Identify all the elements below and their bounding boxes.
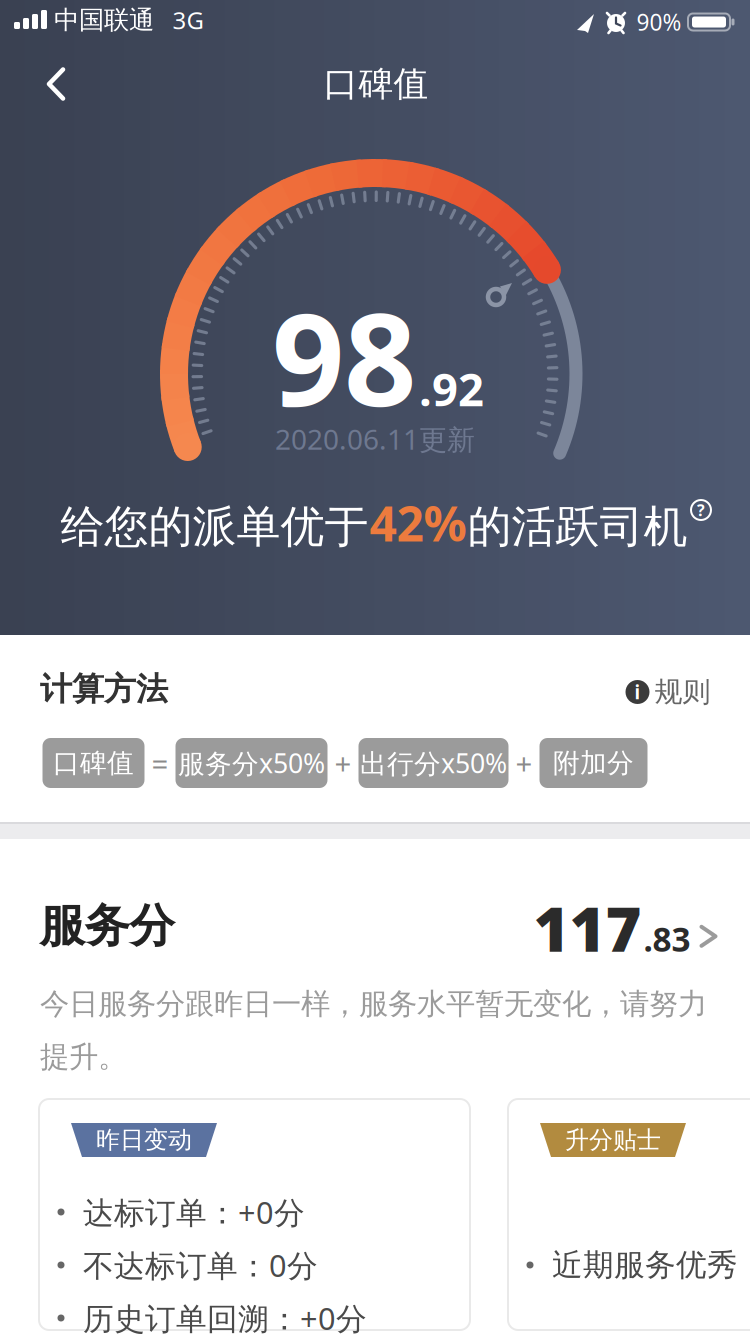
staticText: 98 bbox=[272, 273, 416, 441]
staticText: 42% bbox=[369, 491, 466, 555]
staticText: 给您的派单优于 bbox=[60, 500, 368, 554]
staticText: 出行分x50% bbox=[360, 745, 507, 781]
button[interactable]: i bbox=[625, 675, 710, 709]
staticText: 升分贴士 bbox=[565, 1125, 661, 1155]
staticText: 的活跃司机 bbox=[467, 500, 687, 554]
staticText: 2020.06.11更新 bbox=[275, 420, 475, 458]
staticText: 中国联通 bbox=[54, 4, 154, 35]
staticText: 不达标订单：0分 bbox=[83, 1245, 318, 1285]
staticText: 117 bbox=[533, 887, 641, 969]
staticText: = bbox=[151, 743, 168, 782]
staticText: + bbox=[515, 743, 532, 782]
staticText: i bbox=[634, 680, 640, 704]
staticText: .83 bbox=[643, 917, 690, 961]
staticText: 3G bbox=[172, 4, 203, 36]
staticText: 规则 bbox=[654, 675, 710, 709]
staticText: 近期服务优秀，请继续保持 bbox=[552, 1246, 750, 1284]
staticText: 提升。 bbox=[40, 1039, 127, 1075]
staticText: 今日服务分跟昨日一样，服务水平暂无变化，请努力 bbox=[40, 986, 707, 1022]
staticText: 口碑值 bbox=[53, 747, 134, 779]
staticText: 服务分 bbox=[39, 898, 174, 954]
staticText: .92 bbox=[419, 358, 484, 419]
staticText: 计算方法 bbox=[40, 669, 168, 709]
staticText: 服务分x50% bbox=[178, 745, 325, 781]
staticText: 附加分 bbox=[553, 747, 634, 779]
button[interactable]: 服务分 117.83 bbox=[533, 887, 722, 969]
staticText: + bbox=[334, 743, 351, 782]
staticText: 90% bbox=[636, 7, 681, 37]
button[interactable]: 返回 bbox=[22, 40, 110, 130]
staticText: ? bbox=[697, 499, 705, 521]
staticText: 达标订单：+0分 bbox=[83, 1192, 305, 1232]
staticText: 昨日变动 bbox=[96, 1125, 192, 1155]
staticText: 口碑值 bbox=[323, 63, 428, 105]
button[interactable]: 说明 bbox=[681, 490, 721, 530]
staticText: 历史订单回溯：+0分 bbox=[83, 1298, 367, 1334]
